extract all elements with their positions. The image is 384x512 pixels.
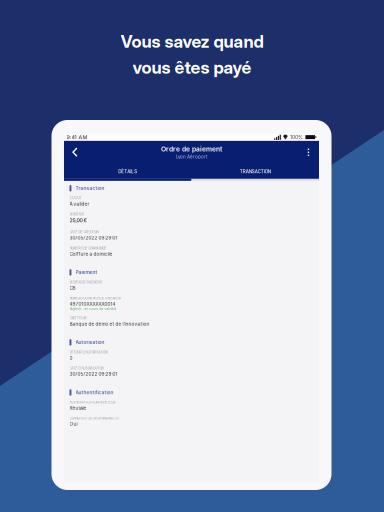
staticText: DATE DE CREATION [69,230,98,234]
staticText: Autorisation [76,339,105,345]
staticText: NUMERO DE COMMANDE [69,246,106,250]
staticText: NUMERO DU MOYEN DE PAIEMENT [69,296,121,300]
staticText: 30/05/2022 09:29:01 [69,371,117,377]
staticText: Paiement [76,269,98,275]
staticText: Banque de démo et de l'innovation [69,321,149,327]
button[interactable]: DÉTAILS [64,164,191,180]
staticText: MOYEN DE PAIEMENT [69,280,102,284]
staticText: RETOUR D'AUTORISATION [69,350,107,354]
staticText: Authentification [76,390,114,395]
staticText: AUTHENTIFICATION ACHETEUR [69,401,115,404]
staticText: 100% [290,134,303,140]
staticText: STATUT [69,196,81,200]
staticText: 25,00 € [69,217,86,223]
staticText: DATE D'AUTORISATION [69,366,103,370]
staticText: TRANSACTION [240,169,271,174]
button[interactable]: More options [299,141,317,164]
staticText: Transaction [76,185,105,191]
staticText: EMETTEUR [69,316,86,320]
staticText: Réussie [69,405,86,411]
staticText: Coiffure a domicile [69,251,112,257]
staticText: 9:41 AM [67,134,88,140]
staticText: DÉTAILS [118,169,137,174]
staticText: Bigtech - en cours de validité [69,307,116,311]
staticText: MONTANT [69,212,84,216]
staticText: 30/05/2022 09:29:01 [69,235,117,241]
staticText: À valider [69,201,89,207]
staticText: Ordre de paiement [161,145,222,153]
staticText: vous êtes payé [132,57,251,78]
staticText: Lyon Aéroport [176,154,207,159]
button[interactable]: TRANSACTION [191,164,319,180]
button[interactable]: Back [65,141,85,164]
staticText: 0 [69,355,72,361]
staticText: 497010XXXXXX0014 [69,301,115,307]
staticText: Oui [69,421,77,427]
staticText: TRANSFERT DE RESPONSABILITÉ [69,417,119,420]
staticText: Vous savez quand [120,31,263,52]
staticText: CB [69,285,75,291]
